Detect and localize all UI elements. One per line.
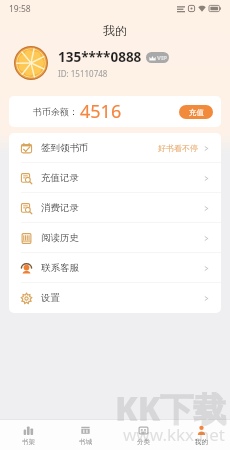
staticText: 4516 <box>80 99 122 124</box>
staticText: 签到领书币 <box>41 142 89 154</box>
staticText: 好书看不停 <box>158 143 198 153</box>
staticText: ID: 15110748 <box>58 68 108 79</box>
staticText: www.kkx.net <box>123 423 225 446</box>
button[interactable]: 书架 <box>0 425 57 446</box>
staticText: VIP <box>157 54 167 62</box>
staticText: 我的 <box>103 23 127 38</box>
staticText: 书架 <box>22 438 35 446</box>
staticText: 阅读历史 <box>41 232 79 244</box>
staticText: 书城 <box>79 438 92 446</box>
button[interactable]: 充值 <box>179 105 213 119</box>
staticText: 书币余额： <box>33 106 78 117</box>
button[interactable]: 分类 <box>114 425 172 446</box>
button[interactable]: 充值记录 <box>9 163 221 193</box>
staticText: KK下载 <box>115 386 227 431</box>
button[interactable]: 书城 <box>57 425 114 446</box>
staticText: 我的 <box>195 438 208 446</box>
staticText: 充值记录 <box>41 172 79 184</box>
button[interactable]: 联系客服 <box>9 253 221 283</box>
staticText: 设置 <box>41 292 60 304</box>
staticText: 分类 <box>137 438 150 446</box>
staticText: 消费记录 <box>41 202 79 214</box>
staticText: 联系客服 <box>41 262 79 274</box>
button[interactable]: 消费记录 <box>9 193 221 223</box>
button[interactable]: 我的 <box>172 425 230 446</box>
button[interactable]: 书币余额： <box>9 96 221 127</box>
button[interactable]: 签到领书币 <box>9 133 221 163</box>
staticText: 19:58 <box>9 3 31 15</box>
button[interactable]: 设置 <box>9 283 221 313</box>
button[interactable]: 阅读历史 <box>9 223 221 253</box>
staticText: 135****0888 <box>58 48 142 66</box>
staticText: 充值 <box>189 108 204 117</box>
